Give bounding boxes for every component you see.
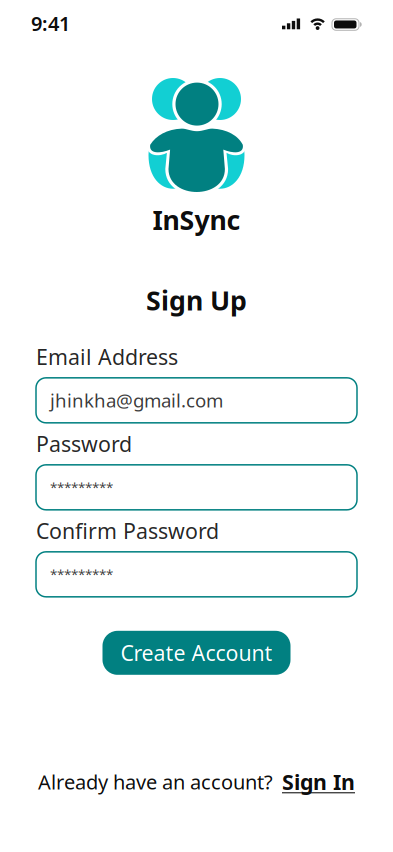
staticText: ********* [50,478,113,496]
staticText: Already have an account? [38,769,273,795]
staticText: Sign Up [146,282,247,318]
button[interactable]: Create Account [102,631,290,675]
staticText: ********* [50,565,113,583]
staticText: jhinkha@gmail.com [50,388,223,413]
staticText: InSync [152,202,240,237]
staticText: Confirm Password [36,517,219,545]
staticText: Password [36,430,132,458]
staticText: Sign In [282,768,355,796]
button[interactable]: Sign In [282,768,355,796]
staticText: Create Account [120,639,272,667]
staticText: 9:41 [31,10,70,37]
staticText: Email Address [36,343,178,371]
